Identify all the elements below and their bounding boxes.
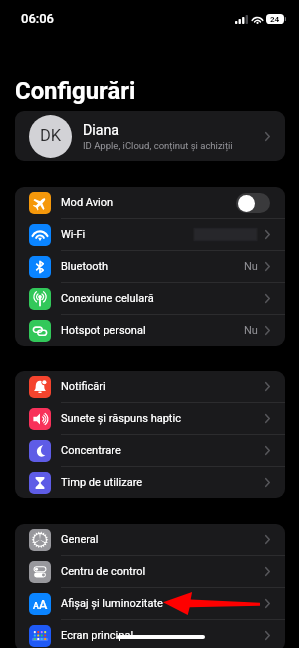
button[interactable]: General (15, 524, 285, 555)
button[interactable]: Airplane mode toggle (236, 193, 270, 213)
staticText: Nu (244, 324, 258, 337)
staticText: Notificări (61, 380, 106, 393)
staticText: Wi-Fi (61, 228, 86, 241)
button[interactable]: Bluetooth (15, 251, 285, 282)
other: Open Apple ID (265, 132, 270, 141)
button[interactable]: Sunete și răspuns haptic (15, 403, 285, 434)
staticText: Afișaj și luminozitate (61, 597, 163, 610)
staticText: A (39, 597, 48, 612)
staticText: General (61, 533, 99, 546)
button[interactable]: Conexiune celulară (15, 283, 285, 314)
button[interactable]: Concentrare (15, 435, 285, 466)
staticText: ID Apple, iCloud, conținut și achiziții (83, 140, 233, 151)
staticText: 06:06 (21, 11, 54, 26)
staticText: Centru de control (61, 565, 146, 578)
staticText: A (33, 601, 39, 612)
staticText: Nu (244, 260, 258, 273)
button[interactable]: DK (15, 111, 285, 161)
staticText: Ecran principal (61, 629, 134, 642)
staticText: Bluetooth (61, 260, 109, 273)
staticText: Hotspot personal (61, 324, 146, 337)
staticText: Mod Avion (61, 196, 114, 209)
button[interactable]: Timp de utilizare (15, 467, 285, 498)
staticText: Sunete și răspuns haptic (61, 412, 181, 425)
button[interactable]: Hotspot personal (15, 315, 285, 346)
staticText: Diana (83, 122, 120, 139)
staticText: 24 (270, 15, 280, 24)
button[interactable]: Notificări (15, 371, 285, 402)
staticText: Timp de utilizare (61, 476, 143, 489)
staticText: Concentrare (61, 444, 121, 457)
staticText: Conexiune celulară (61, 292, 154, 305)
button[interactable]: Centru de control (15, 556, 285, 587)
staticText: Configurări (15, 77, 136, 105)
staticText: DK (40, 126, 62, 145)
button[interactable]: Wi-Fi (15, 219, 285, 250)
button[interactable]: A (15, 588, 285, 619)
button[interactable]: Ecran principal (15, 620, 285, 648)
button[interactable]: Mod Avion (15, 187, 285, 218)
